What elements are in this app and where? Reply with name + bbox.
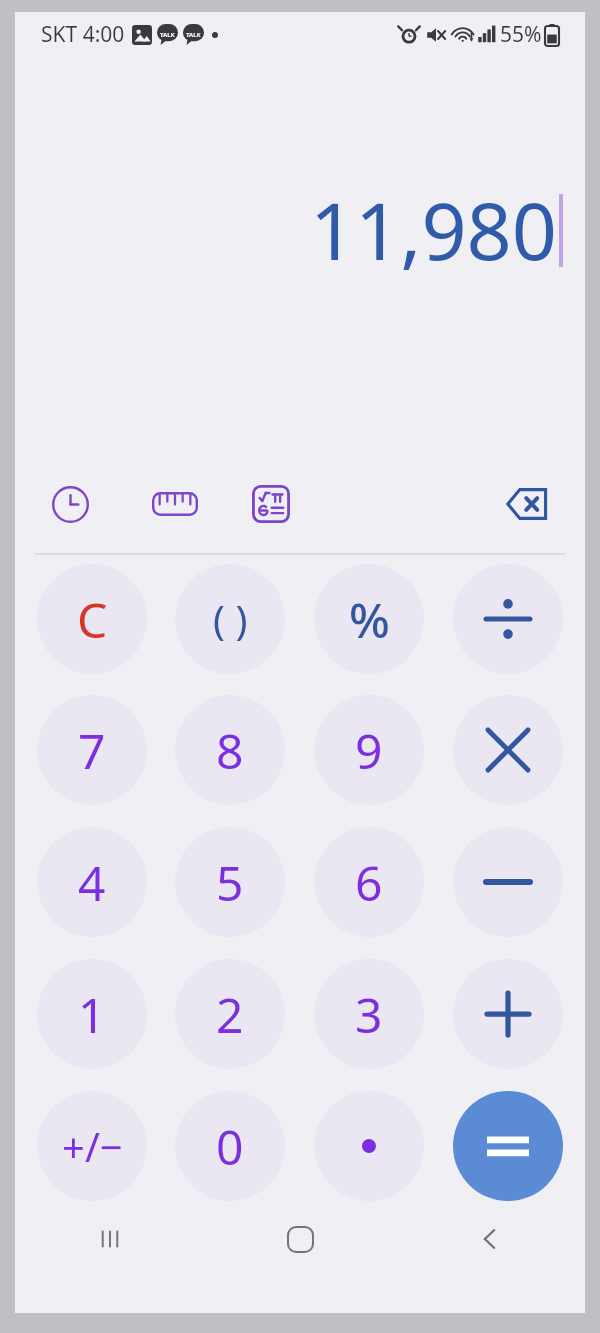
button[interactable]	[453, 959, 563, 1069]
staticText: 11,980	[309, 176, 557, 284]
staticText: 3	[355, 982, 383, 1047]
button[interactable]: Scientific calculator	[235, 470, 335, 538]
staticText: 0	[216, 1114, 244, 1179]
button[interactable]: 4	[37, 827, 147, 937]
staticText: 55%	[500, 20, 542, 49]
staticText: +/−	[62, 1119, 123, 1173]
staticText: 5	[216, 850, 244, 915]
button[interactable]: 8	[175, 695, 285, 805]
button[interactable]: 3	[314, 959, 424, 1069]
button[interactable]: Home	[205, 1210, 395, 1268]
button[interactable]: ( )	[175, 564, 285, 674]
staticText: TALK	[186, 31, 201, 39]
button[interactable]: Recents	[15, 1210, 205, 1268]
button[interactable]: 2	[175, 959, 285, 1069]
staticText: SKT 4:00	[41, 20, 125, 49]
staticText: C	[77, 587, 108, 652]
staticText: 8	[216, 718, 244, 783]
staticText: 2	[216, 982, 244, 1047]
button[interactable]	[453, 695, 563, 805]
staticText: 7	[78, 718, 106, 783]
staticText: TALK	[160, 31, 175, 39]
staticText: 1	[78, 982, 106, 1047]
button[interactable]: Back	[395, 1210, 585, 1268]
button[interactable]: C	[37, 564, 147, 674]
button[interactable]: 7	[37, 695, 147, 805]
button[interactable]: 9	[314, 695, 424, 805]
button[interactable]: %	[314, 564, 424, 674]
staticText: 9	[355, 718, 383, 783]
staticText: 4	[78, 850, 106, 915]
button[interactable]	[453, 827, 563, 937]
staticText: 6	[355, 850, 383, 915]
button[interactable]: 6	[314, 827, 424, 937]
button[interactable]: 5	[175, 827, 285, 937]
staticText: %	[349, 587, 390, 652]
button[interactable]: +/−	[37, 1091, 147, 1201]
button[interactable]: 0	[175, 1091, 285, 1201]
button[interactable]: History	[35, 470, 135, 538]
button[interactable]	[314, 1091, 424, 1201]
button[interactable]	[453, 564, 563, 674]
button[interactable]: Unit converter	[135, 470, 235, 538]
button[interactable]	[453, 1091, 563, 1201]
staticText: ( )	[213, 592, 248, 646]
button[interactable]: 1	[37, 959, 147, 1069]
button[interactable]: Backspace	[493, 468, 565, 540]
